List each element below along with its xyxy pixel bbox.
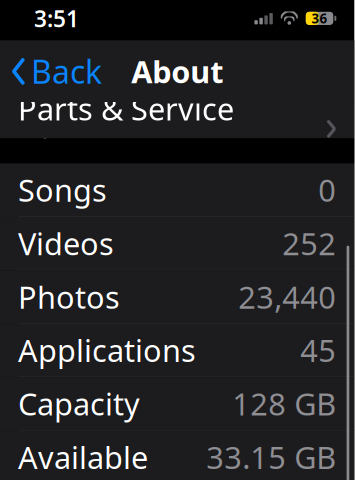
staticText: 23,440 bbox=[238, 276, 336, 317]
staticText: Available bbox=[18, 437, 148, 477]
button[interactable]: Videos bbox=[0, 217, 354, 270]
button[interactable]: Applications bbox=[0, 324, 354, 377]
button[interactable]: Photos bbox=[0, 270, 354, 324]
staticText: 36 bbox=[312, 9, 328, 27]
button[interactable]: Available bbox=[0, 431, 354, 480]
button[interactable]: Songs bbox=[0, 163, 354, 217]
button[interactable]: Back bbox=[0, 44, 102, 99]
staticText: 33.15 GB bbox=[206, 437, 336, 477]
staticText: Songs bbox=[18, 169, 107, 210]
staticText: Videos bbox=[18, 223, 114, 264]
staticText: 3:51 bbox=[34, 3, 79, 33]
staticText: Capacity bbox=[18, 383, 140, 424]
staticText: Back bbox=[31, 50, 102, 93]
staticText: 128 GB bbox=[232, 383, 336, 424]
button[interactable]: Capacity bbox=[0, 377, 354, 431]
staticText: Parts & Service History bbox=[18, 88, 234, 170]
staticText: About bbox=[131, 51, 223, 92]
staticText: 45 bbox=[300, 330, 336, 371]
staticText: 252 bbox=[282, 223, 336, 264]
staticText: 0 bbox=[318, 169, 336, 210]
button[interactable]: Parts & Service History bbox=[0, 102, 354, 155]
staticText: Photos bbox=[18, 276, 120, 317]
staticText: Applications bbox=[18, 330, 196, 371]
